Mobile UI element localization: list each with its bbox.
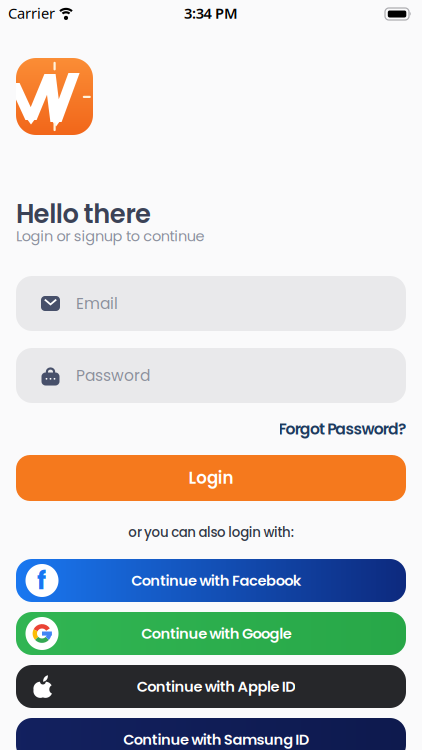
- button[interactable]: Continue with Google: [16, 612, 406, 655]
- button[interactable]: Password: [16, 348, 406, 403]
- button[interactable]: Login: [16, 455, 406, 501]
- staticText: Login or signup to continue: [16, 226, 204, 246]
- staticText: Email: [76, 293, 118, 314]
- staticText: Login: [189, 466, 233, 490]
- staticText: Continue with Facebook: [131, 570, 302, 591]
- staticText: Password: [76, 365, 150, 386]
- button[interactable]: Continue with Facebook: [16, 559, 406, 602]
- staticText: 3:34 PM: [184, 3, 238, 23]
- staticText: Continue with Apple ID: [137, 676, 296, 697]
- button[interactable]: Continue with Samsung ID: [16, 718, 406, 750]
- button[interactable]: Email: [16, 276, 406, 331]
- staticText: Hello there: [16, 196, 151, 232]
- staticText: Forgot Password?: [278, 418, 406, 440]
- staticText: or you can also login with:: [128, 523, 294, 542]
- staticText: f: [37, 563, 46, 598]
- staticText: Continue with Samsung ID: [123, 729, 310, 750]
- button[interactable]: Forgot Password?: [278, 418, 406, 440]
- button[interactable]: Continue with Apple ID: [16, 665, 406, 708]
- staticText: Continue with Google: [141, 623, 292, 644]
- staticText: Carrier: [8, 3, 55, 23]
